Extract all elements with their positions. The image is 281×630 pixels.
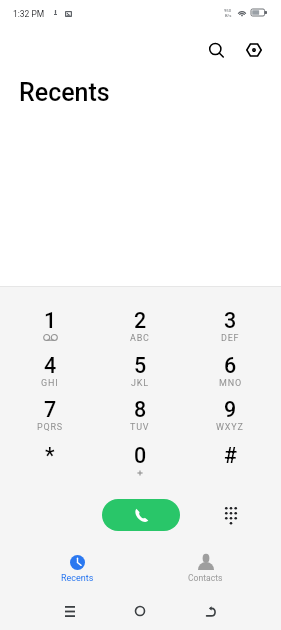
staticText: TUV	[130, 422, 150, 433]
button[interactable]: Settings	[237, 33, 271, 67]
button[interactable]: Recents	[35, 546, 120, 588]
button[interactable]: 6	[185, 353, 275, 398]
staticText: 9	[224, 397, 237, 422]
staticText: MNO	[219, 378, 242, 389]
staticText: ABC	[130, 333, 150, 344]
staticText: Recents	[61, 573, 94, 584]
button[interactable]: 0	[95, 443, 185, 488]
button[interactable]: Call	[102, 499, 180, 531]
staticText: 1	[44, 308, 57, 333]
staticText: PQRS	[37, 422, 63, 433]
button[interactable]: Back	[191, 599, 231, 623]
button[interactable]: 9	[185, 397, 275, 442]
button[interactable]: Recent apps	[50, 599, 90, 623]
staticText: #	[224, 443, 237, 468]
staticText: 3	[224, 308, 237, 333]
staticText: 7	[44, 397, 57, 422]
staticText: 4	[44, 353, 57, 378]
staticText: B/s	[225, 13, 232, 18]
button[interactable]: Show dialpad	[215, 499, 247, 531]
button[interactable]: Search	[199, 33, 233, 67]
staticText: 6	[224, 353, 237, 378]
staticText: 8	[134, 397, 147, 422]
button[interactable]: Contacts	[163, 546, 248, 588]
staticText: Recents	[19, 78, 110, 107]
button[interactable]: 3	[185, 308, 275, 353]
button[interactable]: 5	[95, 353, 185, 398]
button[interactable]: 8	[95, 397, 185, 442]
staticText: WXYZ	[216, 422, 244, 433]
staticText: 2	[134, 308, 147, 333]
button[interactable]: Home	[120, 599, 160, 623]
staticText: GHI	[41, 378, 59, 389]
staticText: 0	[134, 443, 147, 468]
staticText: Contacts	[188, 573, 223, 583]
button[interactable]: *	[5, 443, 95, 488]
button[interactable]: 4	[5, 353, 95, 398]
staticText: JKL	[131, 378, 149, 389]
staticText: 5	[134, 353, 147, 378]
staticText: 1:32 PM	[13, 9, 45, 19]
staticText: DEF	[221, 333, 240, 344]
staticText: 950	[224, 8, 232, 13]
button[interactable]: 2	[95, 308, 185, 353]
button[interactable]: 1	[5, 308, 95, 353]
staticText: *	[45, 443, 55, 468]
button[interactable]: #	[185, 443, 275, 488]
button[interactable]: 7	[5, 397, 95, 442]
